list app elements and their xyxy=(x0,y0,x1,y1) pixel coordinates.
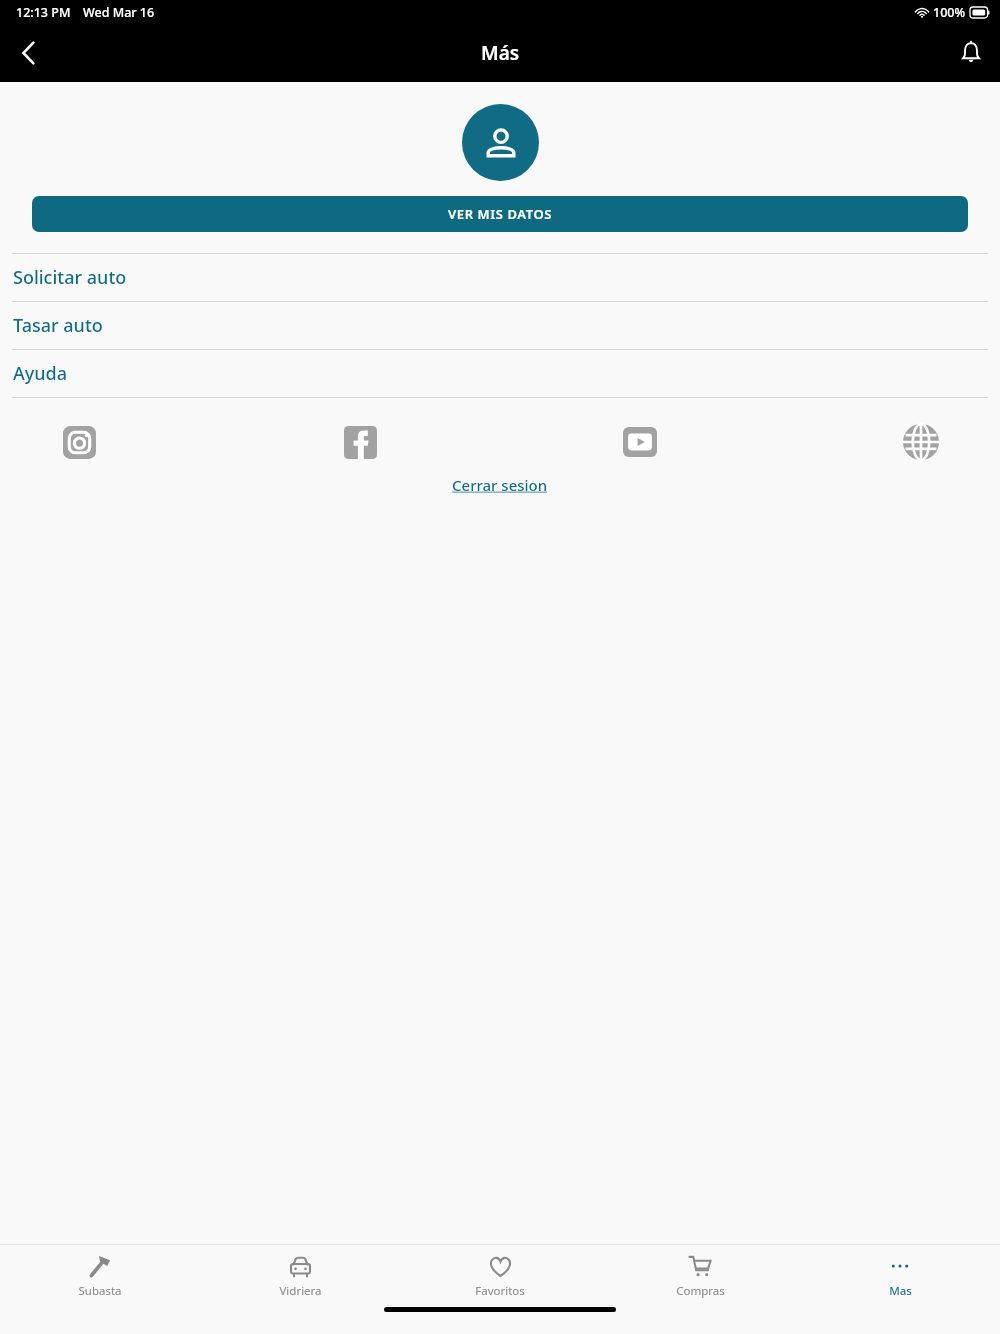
button[interactable]: Cerrar sesion xyxy=(444,471,556,499)
button[interactable]: Solicitar auto xyxy=(0,254,1000,301)
button[interactable]: Facebook xyxy=(337,419,383,465)
staticText: Subasta xyxy=(78,1283,122,1299)
button[interactable]: Ayuda xyxy=(0,350,1000,397)
staticText: Favoritos xyxy=(475,1283,525,1299)
staticText: Vidriera xyxy=(279,1283,322,1299)
staticText: Wed Mar 16 xyxy=(83,4,155,21)
button[interactable]: Mas xyxy=(800,1249,1000,1303)
button[interactable]: Back xyxy=(0,24,58,82)
staticText: Tasar auto xyxy=(13,313,103,338)
staticText: VER MIS DATOS xyxy=(448,205,553,223)
staticText: 12:13 PM xyxy=(16,4,71,21)
button[interactable]: YouTube xyxy=(617,419,663,465)
button[interactable]: Website xyxy=(898,419,944,465)
button[interactable]: Subasta xyxy=(0,1249,200,1303)
button[interactable]: Compras xyxy=(600,1249,800,1303)
button[interactable]: VER MIS DATOS xyxy=(32,196,968,232)
button[interactable]: Instagram xyxy=(56,419,102,465)
button[interactable]: Vidriera xyxy=(200,1249,400,1303)
button[interactable]: Notifications xyxy=(942,24,1000,82)
button[interactable]: Tasar auto xyxy=(0,302,1000,349)
staticText: Solicitar auto xyxy=(13,265,127,290)
button[interactable]: Profile xyxy=(462,104,539,181)
staticText: Mas xyxy=(889,1283,912,1299)
button[interactable]: Favoritos xyxy=(400,1249,600,1303)
staticText: 100% xyxy=(933,4,966,21)
staticText: Más xyxy=(481,40,520,66)
staticText: Cerrar sesion xyxy=(452,475,548,495)
staticText: Ayuda xyxy=(13,361,68,386)
staticText: Compras xyxy=(676,1283,725,1299)
